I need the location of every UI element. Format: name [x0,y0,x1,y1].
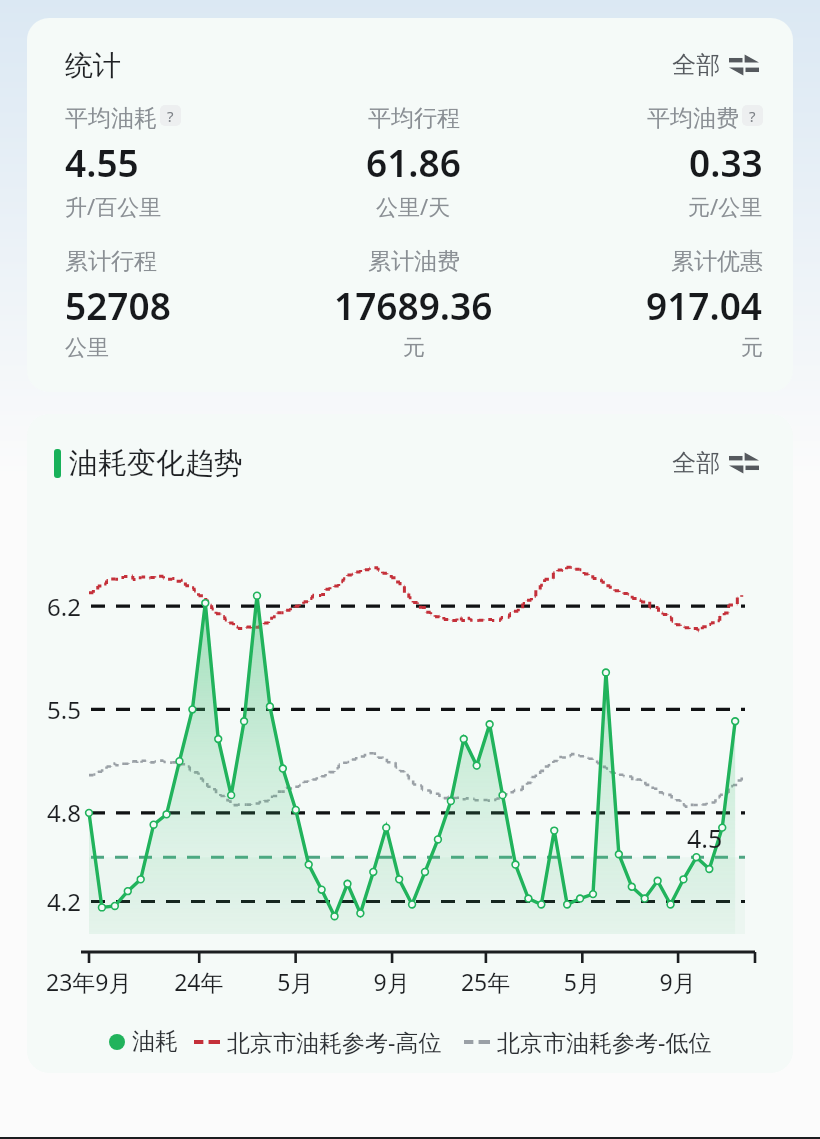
staticText: 油耗变化趋势 [69,445,243,482]
button[interactable]: 说明 [160,105,181,126]
staticText: ? [749,106,756,126]
staticText: 元/公里 [688,191,763,221]
staticText: 4.55 [65,137,139,187]
staticText: 17689.36 [334,280,493,330]
staticText: 917.04 [646,280,763,330]
staticText: 52708 [65,280,171,330]
staticText: 累计行程 [65,247,157,276]
button[interactable]: 全部 [668,444,763,482]
staticText: 全部 [672,50,720,80]
staticText: 累计优惠 [671,247,763,276]
staticText: ? [167,106,174,126]
staticText: 公里/天 [376,191,451,221]
staticText: 全部 [672,448,720,478]
staticText: 元 [403,334,425,362]
staticText: 北京市油耗参考-高位 [227,1026,442,1057]
staticText: 统计 [65,48,121,83]
staticText: 油耗 [132,1027,178,1056]
other: 筛选 [729,450,759,476]
staticText: 升/百公里 [65,191,162,221]
staticText: 北京市油耗参考-低位 [497,1026,712,1057]
staticText: 公里 [65,334,109,362]
staticText: 平均行程 [368,104,460,133]
staticText: 平均油费 [647,104,739,133]
staticText: 61.86 [366,137,461,187]
staticText: 0.33 [689,137,763,187]
staticText: 元 [741,334,763,362]
staticText: 平均油耗 [65,104,157,133]
other: 筛选 [729,52,759,78]
button[interactable]: 全部 [668,46,763,84]
button[interactable]: 说明 [742,105,763,126]
staticText: 累计油费 [368,247,460,276]
